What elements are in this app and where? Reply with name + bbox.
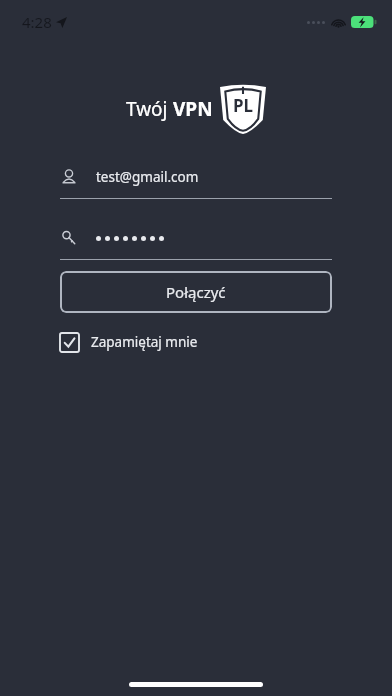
staticText: 4:28 — [22, 12, 52, 32]
staticText: PL — [233, 94, 254, 117]
button[interactable]: Zapamiętaj mnie — [60, 329, 198, 355]
button[interactable]: test@gmail.com — [60, 162, 332, 199]
staticText: Zapamiętaj mnie — [91, 333, 198, 351]
staticText: Twój — [126, 96, 173, 122]
staticText: Połączyć — [166, 282, 226, 302]
staticText: VPN — [173, 96, 213, 122]
button[interactable]: Połączyć — [60, 271, 332, 313]
staticText: test@gmail.com — [96, 168, 199, 186]
button[interactable] — [60, 223, 332, 260]
